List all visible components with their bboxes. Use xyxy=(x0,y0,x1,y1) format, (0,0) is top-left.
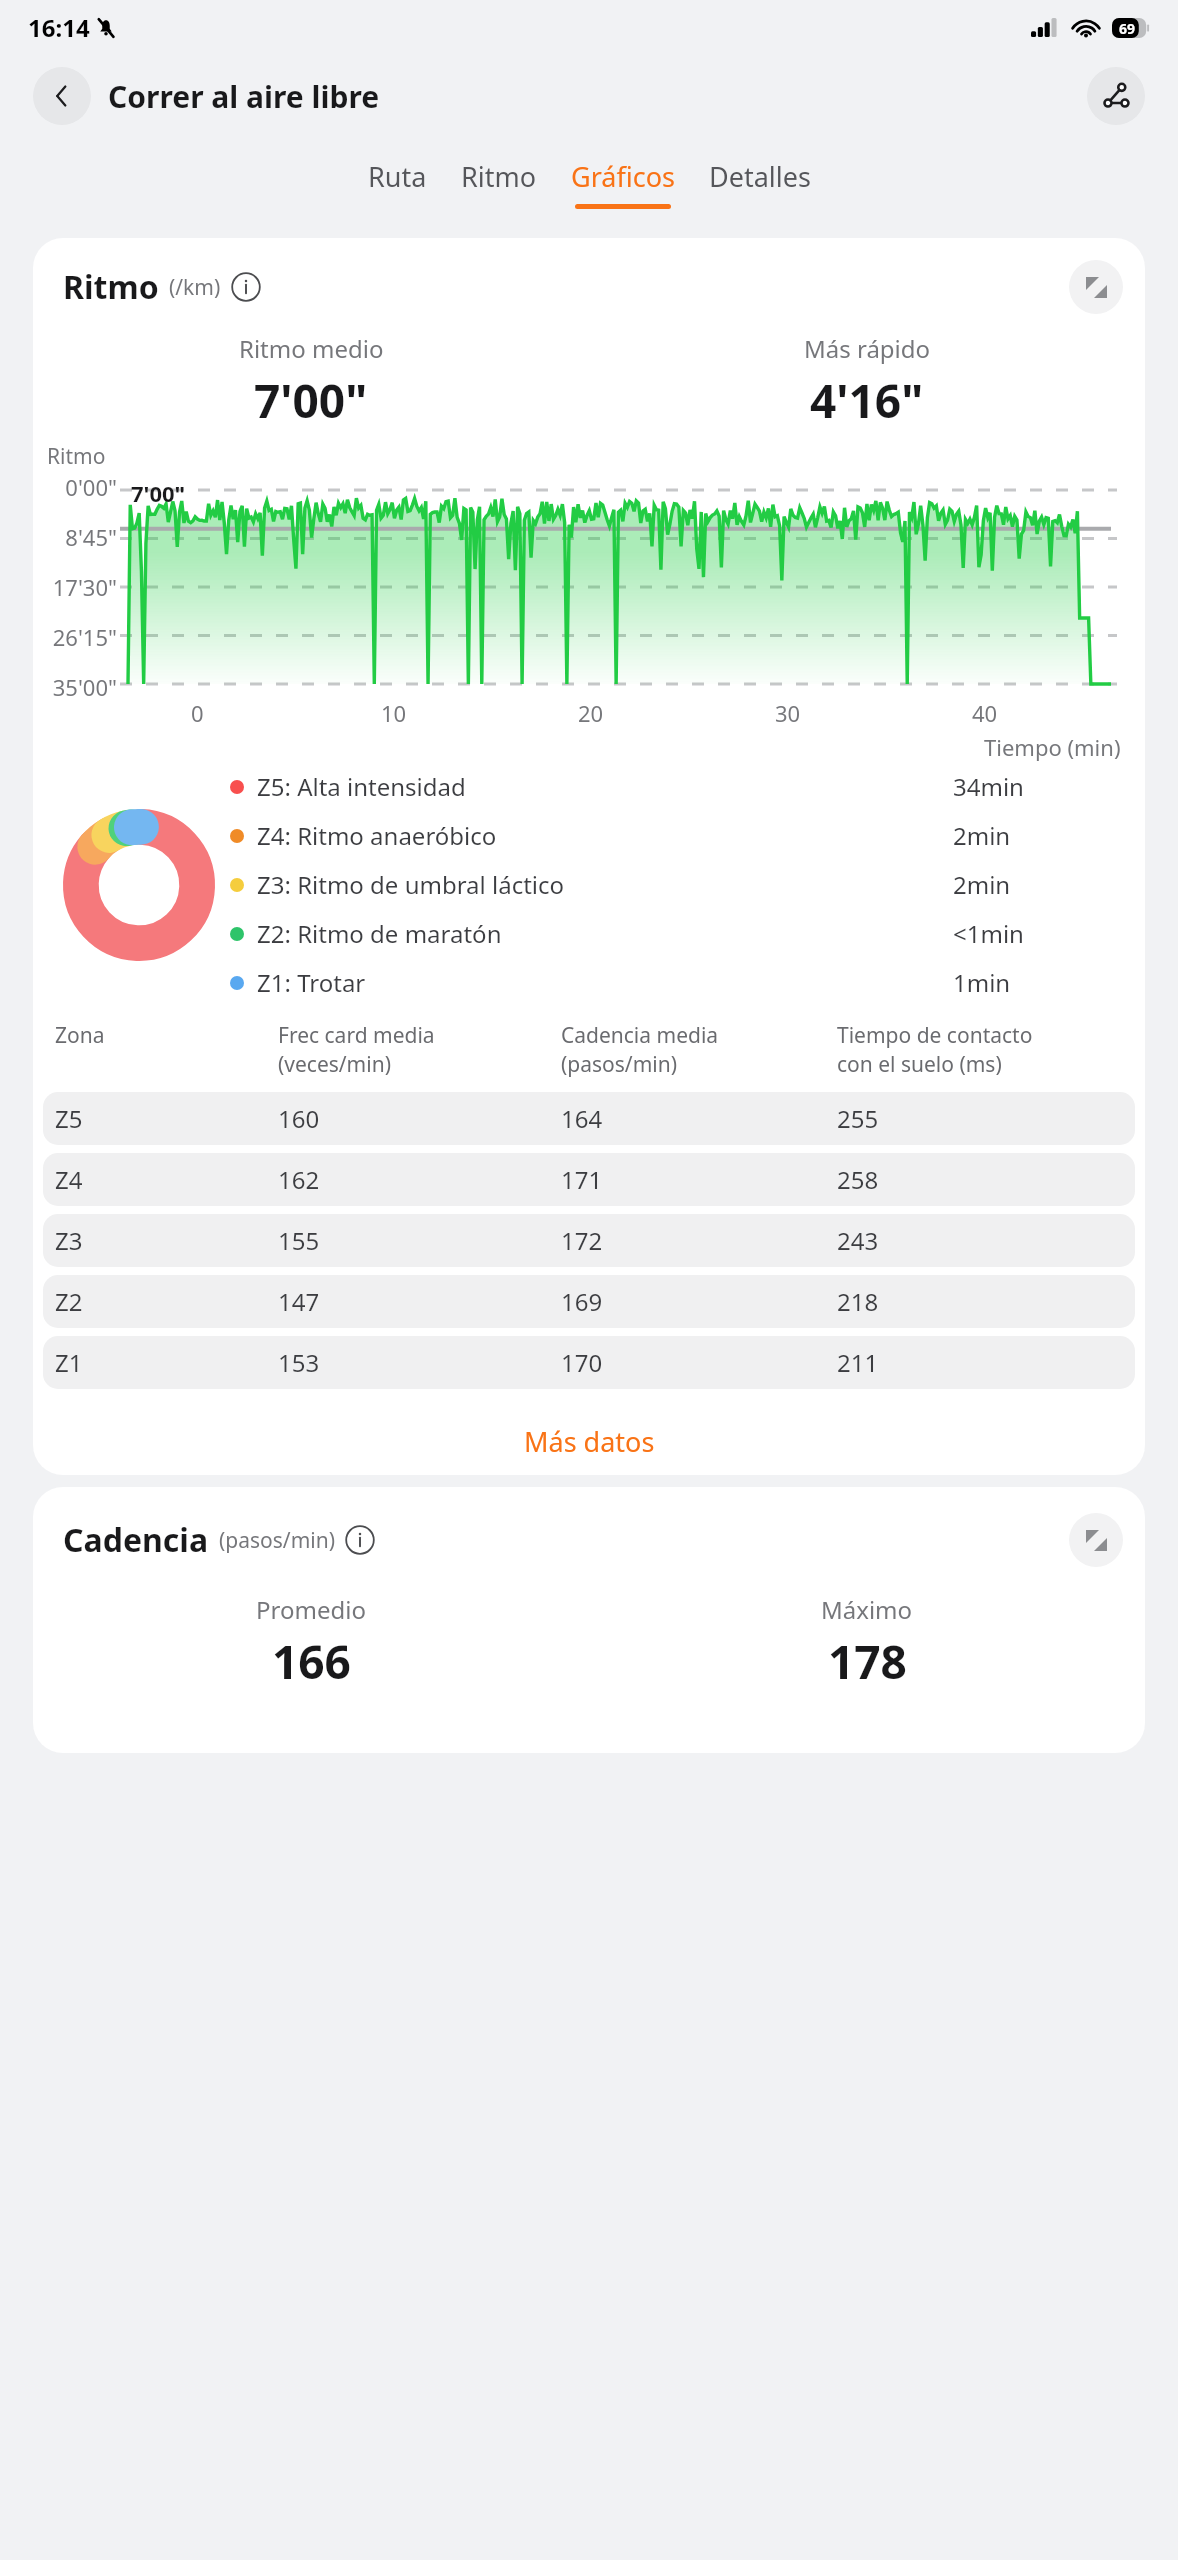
staticText: 166 xyxy=(272,1630,351,1693)
button[interactable]: Share route xyxy=(1087,67,1145,125)
staticText: 155 xyxy=(278,1224,320,1257)
staticText: Ruta xyxy=(368,158,427,195)
staticText: 4'16" xyxy=(810,369,924,432)
staticText: 8'45" xyxy=(65,522,117,552)
staticText: 34min xyxy=(953,770,1024,803)
staticText: Cadencia xyxy=(63,1518,209,1562)
button[interactable]: Expand chart xyxy=(1069,1513,1123,1567)
staticText: Tiempo de contacto con el suelo (ms) xyxy=(837,1021,1033,1078)
staticText: 10 xyxy=(381,698,407,728)
staticText: Z3 xyxy=(55,1224,83,1257)
staticText: Z4: Ritmo anaeróbico xyxy=(257,819,497,852)
staticText: (pasos/min) xyxy=(219,1526,335,1555)
staticText: 0 xyxy=(191,698,204,728)
staticText: 218 xyxy=(837,1285,879,1318)
button[interactable]: Back xyxy=(33,67,91,125)
staticText: 171 xyxy=(561,1163,603,1196)
staticText: 16:14 xyxy=(28,11,90,44)
staticText: 1min xyxy=(953,966,1011,999)
staticText: 243 xyxy=(837,1224,879,1257)
staticText: Detalles xyxy=(709,158,811,195)
staticText: 153 xyxy=(278,1346,320,1379)
staticText: 0'00" xyxy=(65,472,117,502)
staticText: <1min xyxy=(953,917,1024,950)
staticText: Promedio xyxy=(256,1593,366,1626)
button[interactable]: Ritmo xyxy=(461,148,537,204)
staticText: 17'30" xyxy=(52,572,117,602)
staticText: 7'00" xyxy=(254,369,368,432)
staticText: Z3: Ritmo de umbral láctico xyxy=(257,868,565,901)
staticText: Tiempo (min) xyxy=(984,732,1121,762)
staticText: 2min xyxy=(953,868,1011,901)
staticText: 30 xyxy=(775,698,801,728)
staticText: 7'00" xyxy=(131,478,186,508)
staticText: 162 xyxy=(278,1163,320,1196)
staticText: 40 xyxy=(972,698,998,728)
staticText: Correr al aire libre xyxy=(108,76,380,117)
staticText: 211 xyxy=(837,1346,879,1379)
staticText: Z1 xyxy=(55,1346,83,1379)
staticText: 169 xyxy=(561,1285,603,1318)
button[interactable]: Más datos xyxy=(33,1407,1145,1475)
staticText: 178 xyxy=(828,1630,907,1693)
staticText: Cadencia media (pasos/min) xyxy=(561,1021,719,1078)
staticText: Ritmo xyxy=(461,158,537,195)
staticText: Ritmo medio xyxy=(239,332,384,365)
staticText: Z2: Ritmo de maratón xyxy=(257,917,502,950)
button[interactable]: Detalles xyxy=(709,148,811,204)
staticText: Z2 xyxy=(55,1285,83,1318)
staticText: Gráficos xyxy=(571,158,675,195)
staticText: Z5: Alta intensidad xyxy=(257,770,466,803)
staticText: Más datos xyxy=(524,1423,655,1460)
staticText: Z5 xyxy=(55,1102,83,1135)
button[interactable]: Gráficos xyxy=(571,148,675,209)
button[interactable]: Information xyxy=(229,270,263,304)
staticText: (/km) xyxy=(169,273,221,302)
staticText: 35'00" xyxy=(52,672,117,702)
staticText: Zona xyxy=(55,1021,105,1050)
button[interactable]: Ruta xyxy=(368,148,427,204)
staticText: 20 xyxy=(578,698,604,728)
staticText: 170 xyxy=(561,1346,603,1379)
staticText: 2min xyxy=(953,819,1011,852)
staticText: 160 xyxy=(278,1102,320,1135)
staticText: 69 xyxy=(1119,19,1136,38)
staticText: Z1: Trotar xyxy=(257,966,366,999)
staticText: Z4 xyxy=(55,1163,83,1196)
staticText: 172 xyxy=(561,1224,603,1257)
staticText: 258 xyxy=(837,1163,879,1196)
staticText: Máximo xyxy=(821,1593,913,1626)
staticText: 147 xyxy=(278,1285,320,1318)
staticText: 255 xyxy=(837,1102,879,1135)
staticText: 164 xyxy=(561,1102,603,1135)
staticText: Ritmo xyxy=(63,265,159,309)
staticText: 26'15" xyxy=(52,622,117,652)
button[interactable]: Information xyxy=(343,1523,377,1557)
staticText: Más rápido xyxy=(804,332,931,365)
staticText: Ritmo xyxy=(47,442,106,471)
staticText: Frec card media (veces/min) xyxy=(278,1021,435,1078)
button[interactable]: Expand chart xyxy=(1069,260,1123,314)
